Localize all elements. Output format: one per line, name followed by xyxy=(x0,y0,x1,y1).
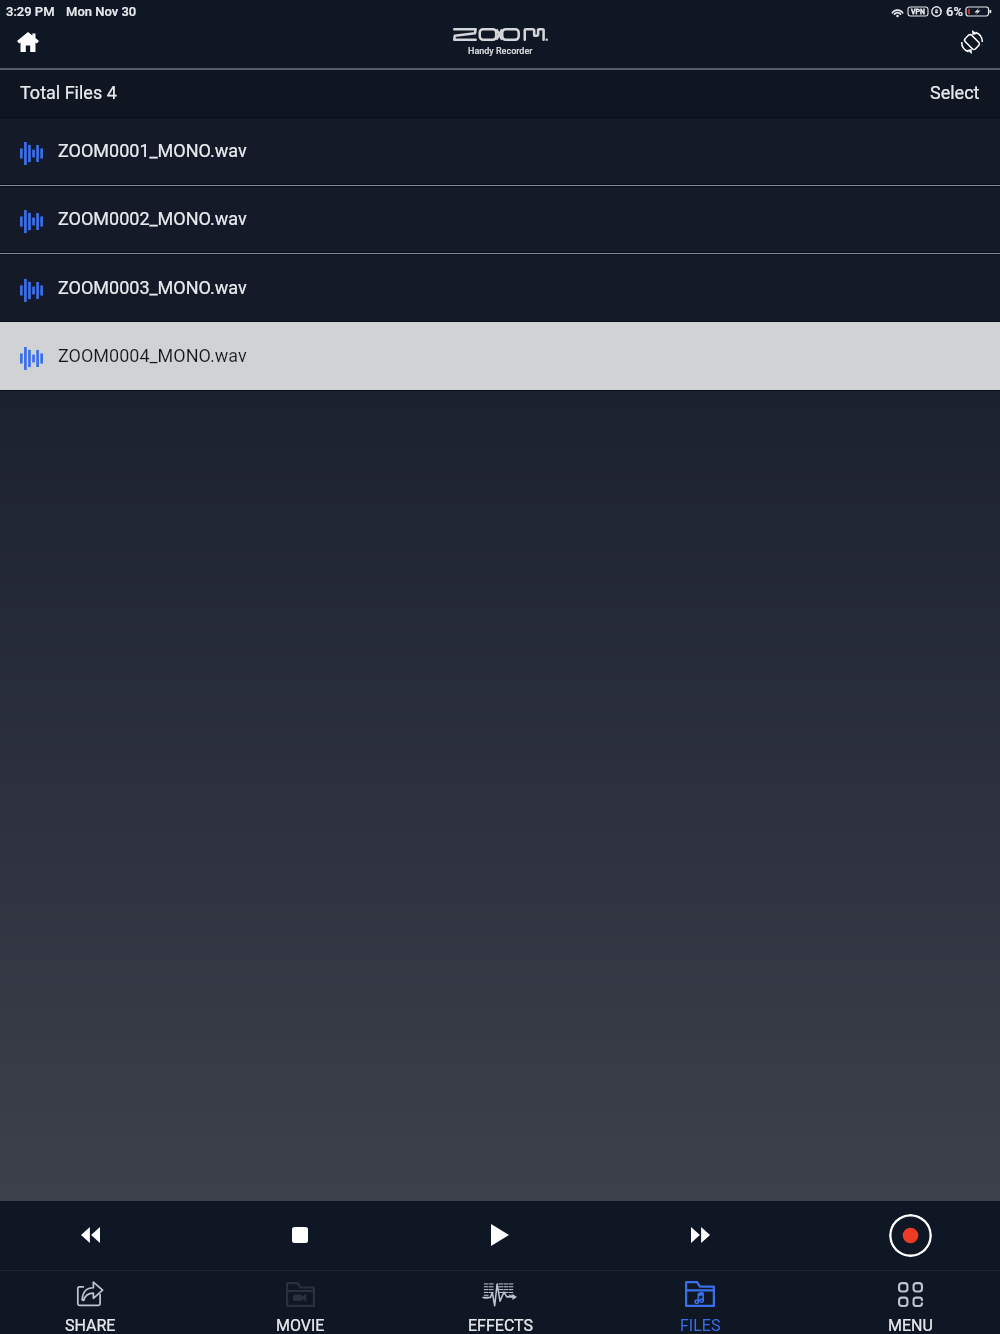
staticText: VPN xyxy=(911,8,925,16)
staticText: 3:29 PM xyxy=(6,4,55,19)
staticText: Mon Nov 30 xyxy=(66,4,137,19)
staticText: MOVIE xyxy=(276,1316,325,1334)
button[interactable]: Home xyxy=(0,22,55,68)
button[interactable]: Rotate screen xyxy=(945,22,1000,68)
staticText: SHARE xyxy=(65,1316,116,1334)
button[interactable]: Play xyxy=(460,1201,540,1269)
button[interactable]: SHARE xyxy=(30,1271,150,1334)
button[interactable]: ZOOM0001_MONO.wav xyxy=(0,118,1000,184)
staticText: 6% xyxy=(946,4,963,19)
button[interactable]: Fast forward xyxy=(660,1201,740,1269)
button[interactable]: Rewind xyxy=(50,1201,130,1269)
button[interactable]: MENU xyxy=(850,1271,970,1334)
staticText: MENU xyxy=(888,1316,933,1334)
staticText: EFFECTS xyxy=(468,1316,533,1334)
button[interactable]: EFFECTS xyxy=(440,1271,560,1334)
staticText: Handy Recorder xyxy=(468,46,533,57)
staticText: FILES xyxy=(680,1316,721,1334)
staticText: ZOOM0004_MONO.wav xyxy=(58,345,247,366)
staticText: ZOOM0003_MONO.wav xyxy=(58,277,247,298)
button[interactable]: FILES xyxy=(640,1271,760,1334)
button[interactable]: ZOOM0003_MONO.wav xyxy=(0,255,1000,321)
staticText: ZOOM0001_MONO.wav xyxy=(58,140,247,161)
button[interactable]: MOVIE xyxy=(240,1271,360,1334)
button[interactable]: Stop xyxy=(260,1201,340,1269)
button[interactable]: Record xyxy=(889,1214,932,1257)
button[interactable]: Select xyxy=(910,70,1000,117)
button[interactable]: ZOOM0002_MONO.wav xyxy=(0,187,1000,252)
button[interactable]: ZOOM0004_MONO.wav xyxy=(0,322,1000,390)
staticText: Select xyxy=(930,82,980,103)
staticText: Total Files 4 xyxy=(20,82,117,103)
staticText: ZOOM0002_MONO.wav xyxy=(58,208,247,229)
